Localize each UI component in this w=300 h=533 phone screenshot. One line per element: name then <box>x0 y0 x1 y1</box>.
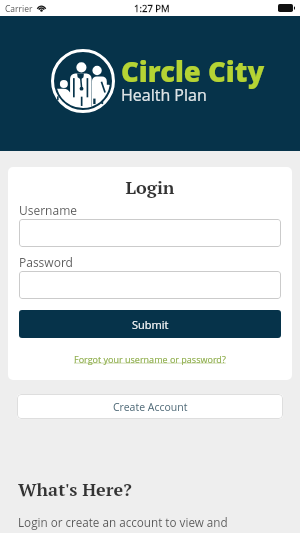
staticText: Login <box>8 175 292 199</box>
staticText: Circle City <box>121 53 265 90</box>
other: Circle City Health Plan logo <box>51 49 115 113</box>
button[interactable] <box>19 271 281 299</box>
button[interactable]: Forgot your username or password? <box>74 353 226 365</box>
button[interactable]: Create Account <box>17 394 283 419</box>
staticText: Password <box>19 254 73 270</box>
button[interactable]: Submit <box>19 310 281 338</box>
button[interactable] <box>19 219 281 247</box>
staticText: Username <box>19 202 78 218</box>
staticText: Submit <box>132 317 169 332</box>
staticText: Health Plan <box>121 84 207 106</box>
staticText: 1:27 PM <box>134 2 170 15</box>
staticText: What's Here? <box>18 477 132 501</box>
staticText: Create Account <box>113 400 188 414</box>
staticText: Login or create an account to view and <box>18 514 228 530</box>
staticText: Carrier <box>5 3 33 15</box>
